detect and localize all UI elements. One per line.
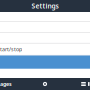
staticText: tart/stop xyxy=(0,46,22,53)
button[interactable] xyxy=(0,22,90,33)
button[interactable]: More xyxy=(88,78,90,90)
button[interactable] xyxy=(0,12,90,22)
staticText: ages xyxy=(0,80,12,88)
staticText: Settings xyxy=(31,2,58,10)
button[interactable]: tart/stop xyxy=(0,43,90,55)
button[interactable]: ages xyxy=(0,78,14,90)
button[interactable] xyxy=(0,33,90,43)
button[interactable]: Settings xyxy=(39,78,51,90)
button[interactable]: List view xyxy=(79,78,88,90)
